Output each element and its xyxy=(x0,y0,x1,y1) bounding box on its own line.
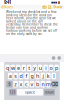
staticText: c xyxy=(25,80,28,88)
button[interactable]: h xyxy=(35,73,40,79)
staticText: w xyxy=(11,64,15,72)
button[interactable]: x xyxy=(19,81,23,87)
button[interactable]: k xyxy=(46,73,51,79)
staticText: l xyxy=(53,72,54,80)
button[interactable]: b xyxy=(35,81,40,87)
button[interactable]: t xyxy=(27,65,31,71)
staticText: ▪▪▪ ▮ xyxy=(51,0,60,4)
staticText: m xyxy=(46,80,51,88)
button[interactable]: space xyxy=(17,89,43,95)
staticText: h xyxy=(36,72,39,80)
button[interactable]: c xyxy=(24,81,29,87)
staticText: u xyxy=(39,64,42,72)
staticText: s xyxy=(14,72,17,80)
button[interactable]: 123 xyxy=(9,89,16,95)
staticText: n xyxy=(41,80,44,88)
staticText: Done xyxy=(54,5,63,9)
button[interactable]: n xyxy=(41,81,45,87)
staticText: ⇧ xyxy=(7,81,11,87)
button[interactable]: Notes xyxy=(0,4,15,9)
button[interactable]: d xyxy=(19,73,23,79)
button[interactable]: z xyxy=(13,81,18,87)
staticText: Notes xyxy=(4,5,14,9)
staticText: 123 xyxy=(10,90,16,94)
staticText: e xyxy=(17,64,20,72)
button[interactable]: a xyxy=(8,73,12,79)
button[interactable]: Format xyxy=(52,56,55,60)
staticText: y xyxy=(33,64,36,72)
button[interactable]: Compose xyxy=(47,4,52,9)
button[interactable]: w xyxy=(11,65,15,71)
staticText: ⌫ xyxy=(51,81,59,87)
button[interactable]: s xyxy=(13,73,18,79)
staticText: f xyxy=(26,72,28,80)
staticText: 9:41 xyxy=(4,0,11,5)
button[interactable]: Add attachment xyxy=(42,4,47,9)
staticText: z xyxy=(14,80,17,88)
button[interactable]: ⌫ xyxy=(51,81,58,87)
staticText: b xyxy=(36,80,39,88)
button[interactable]: q xyxy=(5,65,10,71)
button[interactable]: l xyxy=(51,73,56,79)
staticText: x xyxy=(20,80,23,88)
staticText: j xyxy=(42,72,43,80)
staticText: space xyxy=(25,90,35,95)
staticText: q xyxy=(6,64,9,72)
button[interactable]: f xyxy=(24,73,29,79)
staticText: r xyxy=(23,64,25,72)
staticText: p xyxy=(55,64,58,72)
button[interactable]: p xyxy=(54,65,59,71)
staticText: g xyxy=(30,72,33,80)
button[interactable]: Done xyxy=(52,4,64,9)
button[interactable]: u xyxy=(38,65,42,71)
staticText: k xyxy=(47,72,50,80)
button[interactable]: i xyxy=(43,65,48,71)
button[interactable]: j xyxy=(41,73,45,79)
button[interactable]: r xyxy=(22,65,26,71)
staticText: Weekend trip checklist and a few packing… xyxy=(6,10,58,35)
staticText: v xyxy=(30,80,33,88)
button[interactable]: return xyxy=(44,89,55,95)
button[interactable]: ⇧ xyxy=(6,81,12,87)
button[interactable]: m xyxy=(46,81,51,87)
staticText: d xyxy=(20,72,23,80)
staticText: return xyxy=(45,90,54,94)
button[interactable]: o xyxy=(49,65,53,71)
staticText: i xyxy=(45,64,46,72)
staticText: o xyxy=(50,64,53,72)
staticText: a xyxy=(9,72,12,80)
button[interactable]: v xyxy=(30,81,34,87)
staticText: t xyxy=(28,64,30,72)
button[interactable]: e xyxy=(16,65,21,71)
button[interactable]: y xyxy=(32,65,37,71)
button[interactable]: g xyxy=(30,73,34,79)
button[interactable]: Hide keyboard xyxy=(57,56,61,60)
